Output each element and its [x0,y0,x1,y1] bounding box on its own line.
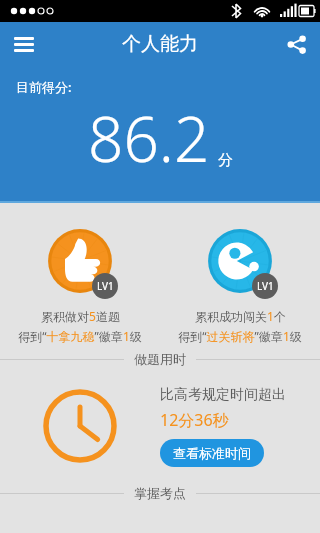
staticText: LV1 [97,279,114,293]
staticText: 分 [218,151,233,170]
staticText: 12分36秒 [160,409,229,431]
button[interactable]: LV1 [160,223,320,344]
staticText: 累积做对5道题 [41,308,120,324]
button[interactable]: LV1 [0,223,160,344]
staticText: 查看标准时间 [173,445,251,461]
staticText: 得到“过关斩将”徽章1级 [178,328,302,344]
staticText: LV1 [257,279,274,293]
staticText: 86.2 [88,96,210,180]
staticText: 个人能力 [122,32,198,56]
staticText: 做题用时 [134,351,186,367]
button[interactable]: Share [272,22,320,66]
staticText: 累积成功闯关1个 [195,308,286,324]
button[interactable]: 查看标准时间 [160,439,264,467]
staticText: 比高考规定时间超出 [160,386,286,404]
staticText: 目前得分: [16,78,72,96]
staticText: 掌握考点 [134,485,186,501]
staticText: 得到“十拿九稳”徽章1级 [18,328,142,344]
button[interactable]: Menu [0,22,48,66]
